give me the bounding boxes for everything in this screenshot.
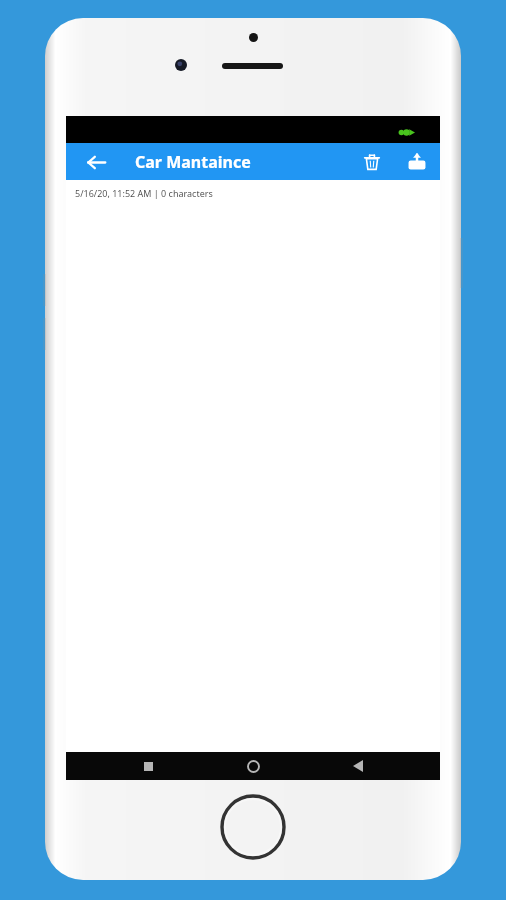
staticText: 5/16/20, 11:52 AM | 0 characters: [75, 187, 213, 199]
button[interactable]: Share: [400, 145, 433, 178]
button[interactable]: Delete: [355, 145, 388, 178]
button[interactable]: Home: [230, 752, 276, 780]
button[interactable]: Recent apps: [125, 752, 171, 780]
staticText: Car Mantaince: [135, 151, 251, 173]
button[interactable]: Back: [335, 752, 381, 780]
button[interactable]: Back: [79, 145, 113, 179]
